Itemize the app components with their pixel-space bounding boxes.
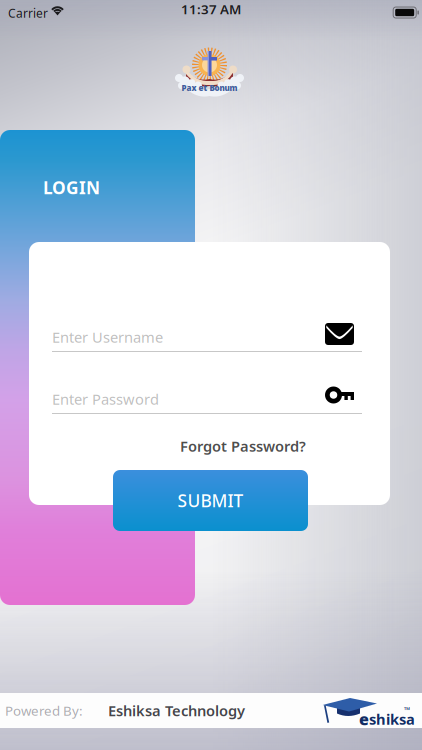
staticText: ™ [404,704,410,715]
staticText: Pax et Bonum [181,83,237,93]
button[interactable]: Forgot Password? [52,437,306,455]
staticText: Eshiksa Technology [108,701,245,720]
staticText: LOGIN [43,176,100,199]
staticText: SUBMIT [177,489,243,512]
button[interactable]: Enter Password [52,384,362,414]
staticText: Enter Username [52,327,163,347]
staticText: Forgot Password? [180,436,306,456]
staticText: e [359,708,369,730]
button[interactable]: SUBMIT [113,470,308,531]
staticText: Carrier [8,5,48,21]
staticText: Enter Password [52,389,159,409]
button[interactable]: Enter Username [52,322,362,352]
staticText: shiksa [369,709,415,729]
staticText: Powered By: [5,702,83,719]
staticText: 11:37 AM [181,0,241,18]
